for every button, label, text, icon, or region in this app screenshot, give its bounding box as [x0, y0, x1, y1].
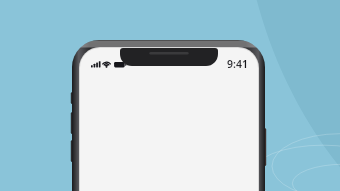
staticText: 9:41 — [214, 57, 248, 191]
button[interactable]: Network and battery status — [91, 60, 133, 69]
button[interactable]: 9:41 — [214, 57, 248, 191]
